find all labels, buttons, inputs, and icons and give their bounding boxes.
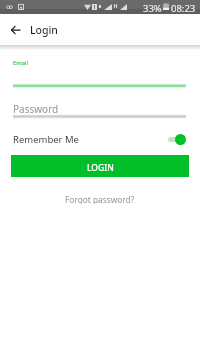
staticText: Email <box>13 59 28 67</box>
button[interactable]: Remember me, on <box>166 131 188 147</box>
staticText: 08:23 <box>171 2 196 15</box>
staticText: Password <box>13 102 59 116</box>
button[interactable]: LOGIN <box>11 155 189 177</box>
button[interactable]: Remember Me <box>11 129 189 149</box>
button[interactable]: Forgot password? <box>57 191 143 207</box>
staticText: Remember Me <box>13 133 79 146</box>
button[interactable]: Email field <box>11 54 189 90</box>
staticText: LOGIN <box>87 162 114 174</box>
staticText: 33% <box>143 2 162 15</box>
staticText: Login <box>30 23 58 37</box>
button[interactable]: Password field <box>11 96 189 120</box>
button[interactable]: Navigate up <box>2 14 28 45</box>
